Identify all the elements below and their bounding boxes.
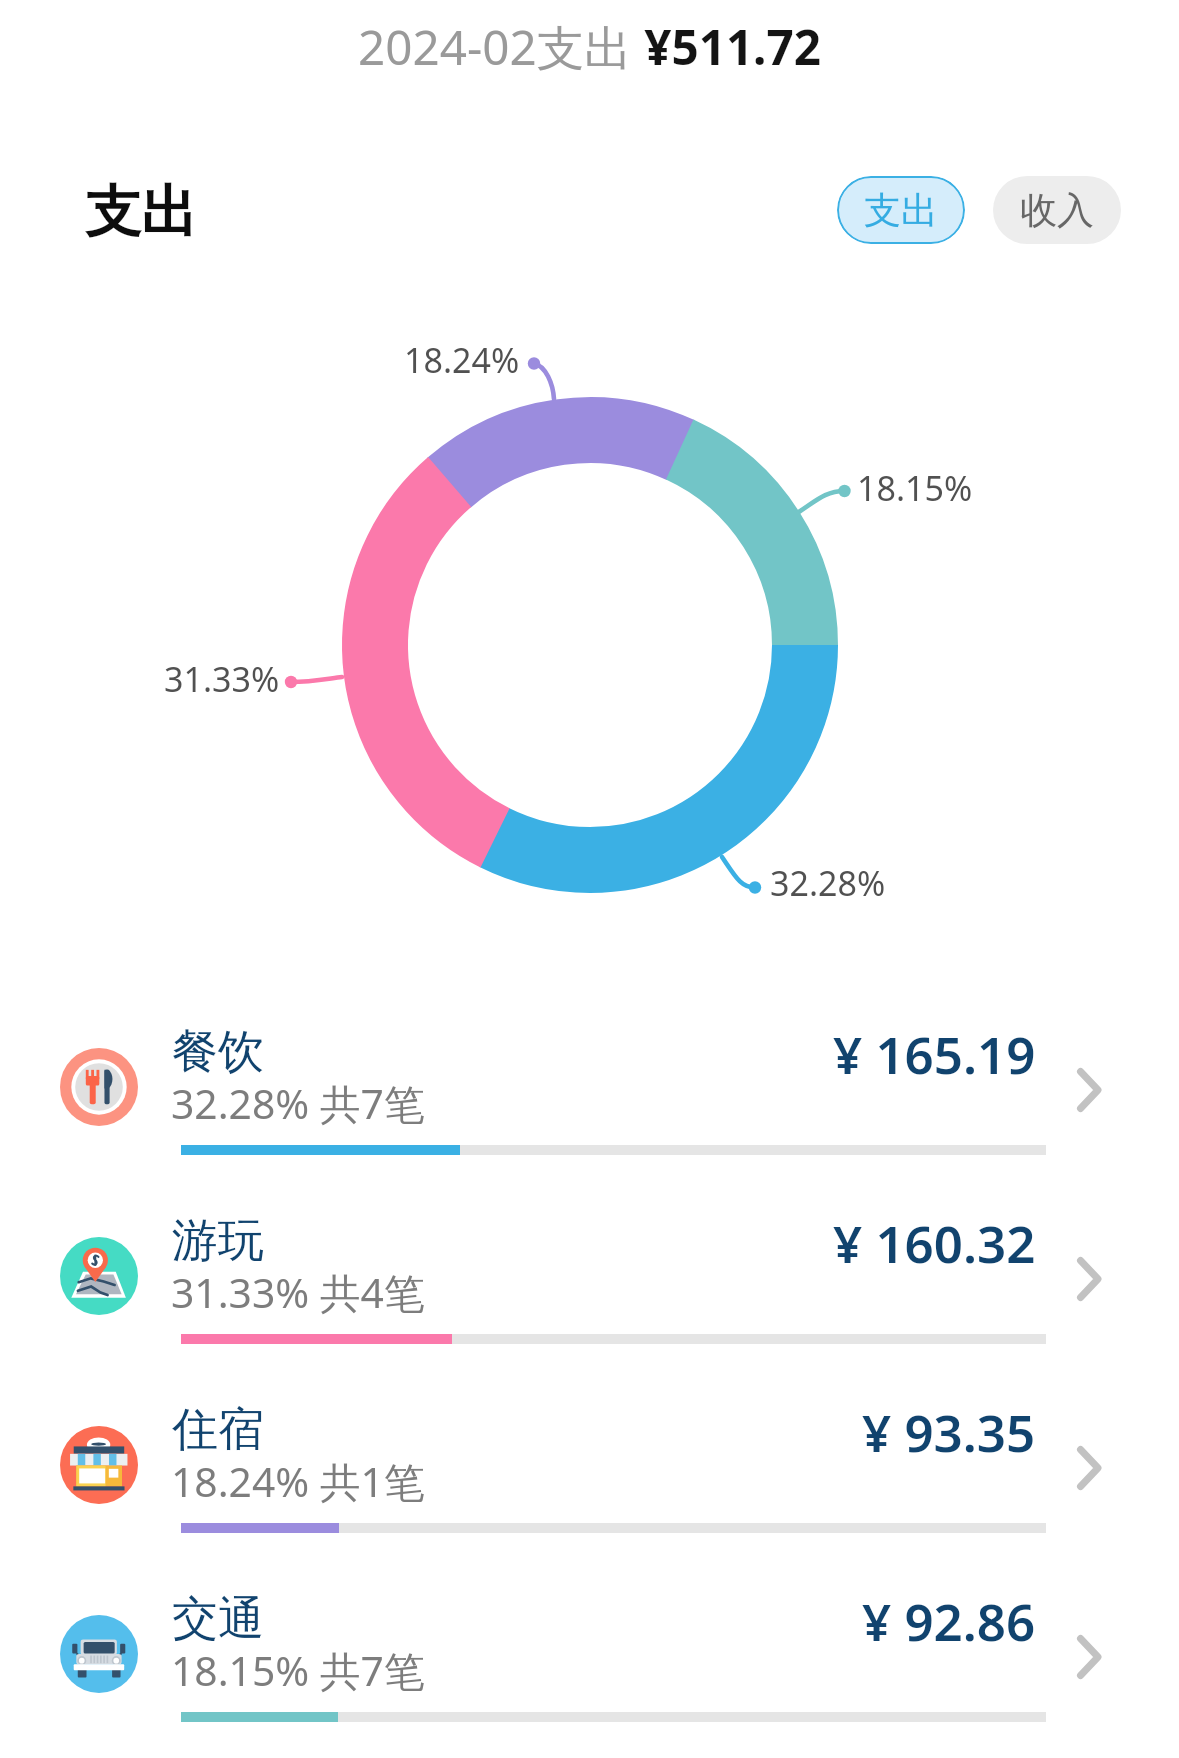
staticText: 18.24% 共1笔	[171, 1453, 425, 1509]
button[interactable]: 收入	[993, 176, 1121, 244]
staticText: 18.15%	[857, 465, 973, 511]
staticText: 游玩	[172, 1212, 264, 1270]
button[interactable]: 游玩	[0, 1197, 1179, 1386]
staticText: 18.15% 共7笔	[171, 1642, 425, 1698]
other: 查看详情	[1077, 1244, 1131, 1308]
button[interactable]: 支出	[837, 176, 965, 244]
button[interactable]: 住宿	[0, 1386, 1179, 1575]
other: 查看详情	[1077, 1055, 1131, 1119]
staticText: ¥ 165.19	[833, 1019, 1036, 1088]
staticText: 收入	[1020, 187, 1094, 234]
staticText: 支出	[864, 187, 938, 234]
staticText: 31.33% 共4笔	[171, 1264, 425, 1320]
staticText: 2024-02支出 ¥511.72	[358, 14, 821, 79]
staticText: ¥ 160.32	[833, 1208, 1036, 1277]
other: 查看详情	[1077, 1433, 1131, 1497]
other: 查看详情	[1077, 1622, 1131, 1686]
button[interactable]: 交通	[0, 1575, 1179, 1758]
staticText: 18.24%	[404, 337, 520, 383]
button[interactable]: 餐饮	[0, 1008, 1179, 1197]
staticText: 32.28%	[770, 860, 886, 906]
staticText: 住宿	[172, 1401, 264, 1459]
staticText: 32.28% 共7笔	[171, 1075, 425, 1131]
staticText: 餐饮	[172, 1023, 264, 1081]
staticText: ¥ 92.86	[862, 1586, 1036, 1655]
staticText: 31.33%	[164, 656, 280, 702]
staticText: ¥ 93.35	[862, 1397, 1036, 1466]
staticText: 支出	[85, 177, 197, 248]
staticText: 交通	[172, 1590, 264, 1648]
